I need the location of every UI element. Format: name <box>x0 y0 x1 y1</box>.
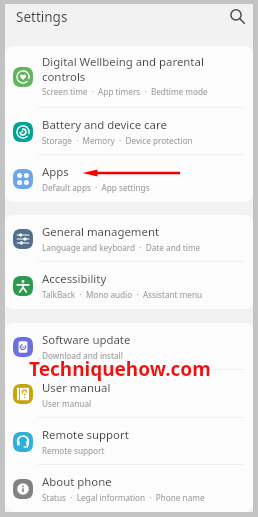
button[interactable]: User manual <box>5 370 253 418</box>
staticText: General management <box>42 224 160 240</box>
staticText: Screen time · App timers · Bedtime mode <box>42 86 208 97</box>
button[interactable]: About phone <box>5 465 253 512</box>
button[interactable]: Remote support <box>5 418 253 465</box>
staticText: Digital Wellbeing and parental controls <box>42 54 243 84</box>
staticText: About phone <box>42 474 112 490</box>
staticText: Techniquehow.com <box>29 356 211 382</box>
staticText: Remote support <box>42 427 129 443</box>
button[interactable]: Battery and device care <box>5 108 253 155</box>
button[interactable]: Apps <box>5 155 253 202</box>
staticText: Remote support <box>42 445 105 456</box>
staticText: Accessibility <box>42 271 107 287</box>
staticText: Software update <box>42 332 131 348</box>
staticText: TalkBack · Mono audio · Assistant menu <box>42 289 203 300</box>
staticText: Apps <box>42 164 69 180</box>
staticText: Settings <box>16 8 68 26</box>
button[interactable]: Search <box>223 4 249 30</box>
staticText: User manual <box>42 398 92 409</box>
staticText: Status · Legal information · Phone name <box>42 492 205 503</box>
staticText: Battery and device care <box>42 117 167 133</box>
staticText: User manual <box>42 380 111 396</box>
staticText: Download and install <box>42 350 123 361</box>
button[interactable]: General management <box>5 215 253 262</box>
staticText: Storage · Memory · Device protection <box>42 135 193 146</box>
button[interactable]: Software update <box>5 323 253 370</box>
staticText: Language and keyboard · Date and time <box>42 242 201 253</box>
button[interactable]: Accessibility <box>5 262 253 309</box>
staticText: Default apps · App settings <box>42 182 150 193</box>
button[interactable]: Digital Wellbeing and parental controls <box>5 46 253 108</box>
